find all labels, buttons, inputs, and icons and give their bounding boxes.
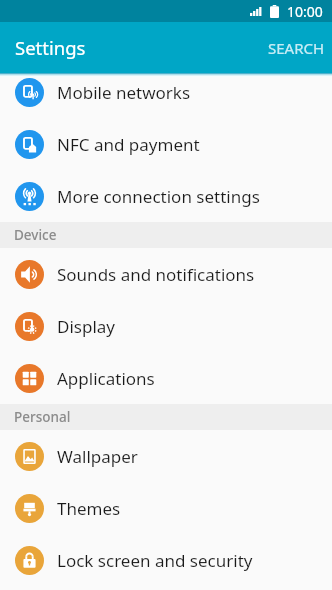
button[interactable]: Sounds and notifications (0, 248, 332, 300)
staticText: More connection settings (57, 185, 260, 208)
staticText: Wallpaper (57, 445, 138, 468)
button[interactable]: Wallpaper (0, 430, 332, 482)
staticText: Lock screen and security (57, 549, 253, 572)
staticText: SEARCH (268, 38, 325, 58)
button[interactable]: More connection settings (0, 170, 332, 222)
button[interactable]: SEARCH (261, 26, 332, 70)
staticText: Display (57, 315, 115, 338)
staticText: Device (14, 226, 57, 244)
button[interactable]: Themes (0, 482, 332, 534)
staticText: 10:00 (287, 2, 323, 21)
staticText: NFC and payment (57, 133, 200, 156)
staticText: Personal (14, 408, 71, 426)
staticText: Sounds and notifications (57, 263, 255, 286)
button[interactable]: Applications (0, 352, 332, 404)
staticText: Mobile networks (57, 81, 191, 104)
staticText: Themes (57, 497, 121, 520)
button[interactable]: Display (0, 300, 332, 352)
button[interactable]: Lock screen and security (0, 534, 332, 586)
staticText: Settings (15, 35, 86, 60)
staticText: Applications (57, 367, 155, 390)
button[interactable]: NFC and payment (0, 118, 332, 170)
button[interactable]: Mobile networks (0, 66, 332, 118)
